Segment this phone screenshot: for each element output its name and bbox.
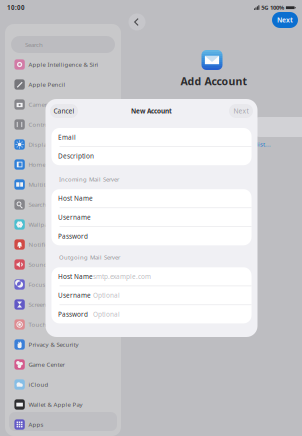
staticText: Touch ID & Passcode — [28, 320, 89, 329]
staticText: Wallet & Apple Pay — [28, 400, 82, 409]
staticText: Apple Pencil — [28, 80, 65, 89]
staticText: Password — [58, 310, 88, 319]
button[interactable]: Multitasking & Gestures — [9, 174, 118, 194]
button[interactable]: Search — [9, 194, 118, 214]
button[interactable]: Home Screen & App Library — [9, 154, 118, 174]
staticText: Next — [277, 15, 293, 25]
staticText: Search — [25, 40, 43, 49]
staticText: Sounds — [28, 260, 50, 269]
staticText: Focus — [28, 280, 45, 289]
staticText: list... — [256, 140, 271, 148]
staticText: Control Center — [28, 120, 70, 129]
staticText: Username — [58, 213, 91, 222]
button[interactable]: Game Center — [9, 354, 118, 374]
staticText: Username — [58, 291, 91, 300]
staticText: Display & Brightness — [28, 140, 88, 149]
staticText: 100% — [270, 3, 284, 11]
button[interactable]: Apple Intelligence & Siri — [9, 54, 118, 74]
button[interactable]: Touch ID & Passcode — [9, 314, 118, 334]
staticText: Apple Intelligence & Siri — [28, 60, 98, 69]
staticText: Add Account — [180, 74, 247, 88]
staticText: Search — [28, 200, 46, 209]
staticText: Password — [58, 232, 88, 240]
staticText: 5G — [261, 3, 268, 11]
staticText: Screen Time — [28, 300, 62, 309]
button[interactable]: Sounds — [9, 254, 118, 274]
button[interactable]: Camera — [9, 94, 118, 114]
staticText: New Account — [131, 107, 172, 115]
button[interactable]: Notifications — [9, 234, 118, 254]
staticText: iCloud — [28, 380, 48, 389]
staticText: Next — [233, 106, 248, 116]
button[interactable]: Privacy & Security — [9, 334, 118, 354]
button[interactable]: Back — [127, 12, 147, 32]
staticText: Optional — [93, 310, 120, 319]
staticText: Apps — [28, 420, 43, 429]
button[interactable]: iCloud — [9, 374, 118, 394]
staticText: Wallpaper — [28, 220, 56, 229]
button[interactable]: Display & Brightness — [9, 134, 118, 154]
staticText: Home Screen & App Library — [28, 160, 106, 169]
staticText: Host Name — [58, 194, 93, 203]
button[interactable]: Apps — [9, 414, 118, 434]
button[interactable]: Apple Pencil — [9, 74, 118, 94]
staticText: Cancel — [53, 106, 74, 116]
staticText: Optional — [93, 291, 120, 300]
staticText: Incoming Mail Server — [59, 175, 119, 183]
button[interactable]: Next — [272, 12, 298, 28]
staticText: smtp.example.com — [93, 272, 151, 281]
staticText: 10:00 — [7, 3, 25, 12]
staticText: Email — [58, 133, 76, 141]
staticText: Game Center — [28, 360, 64, 369]
button[interactable]: Focus — [9, 274, 118, 294]
button[interactable]: Wallpaper — [9, 214, 118, 234]
staticText: Notifications — [28, 240, 66, 249]
staticText: Outgoing Mail Server — [59, 253, 120, 261]
button[interactable]: Control Center — [9, 114, 118, 134]
staticText: Host Name — [58, 272, 93, 281]
staticText: Camera — [28, 100, 49, 109]
button[interactable]: Cancel — [50, 104, 78, 118]
button[interactable]: Next — [229, 104, 253, 118]
staticText: Description — [58, 152, 94, 160]
button[interactable]: Screen Time — [9, 294, 118, 314]
staticText: Multitasking & Gestures — [28, 180, 96, 189]
staticText: Privacy & Security — [28, 340, 78, 349]
button[interactable]: Wallet & Apple Pay — [9, 394, 118, 414]
